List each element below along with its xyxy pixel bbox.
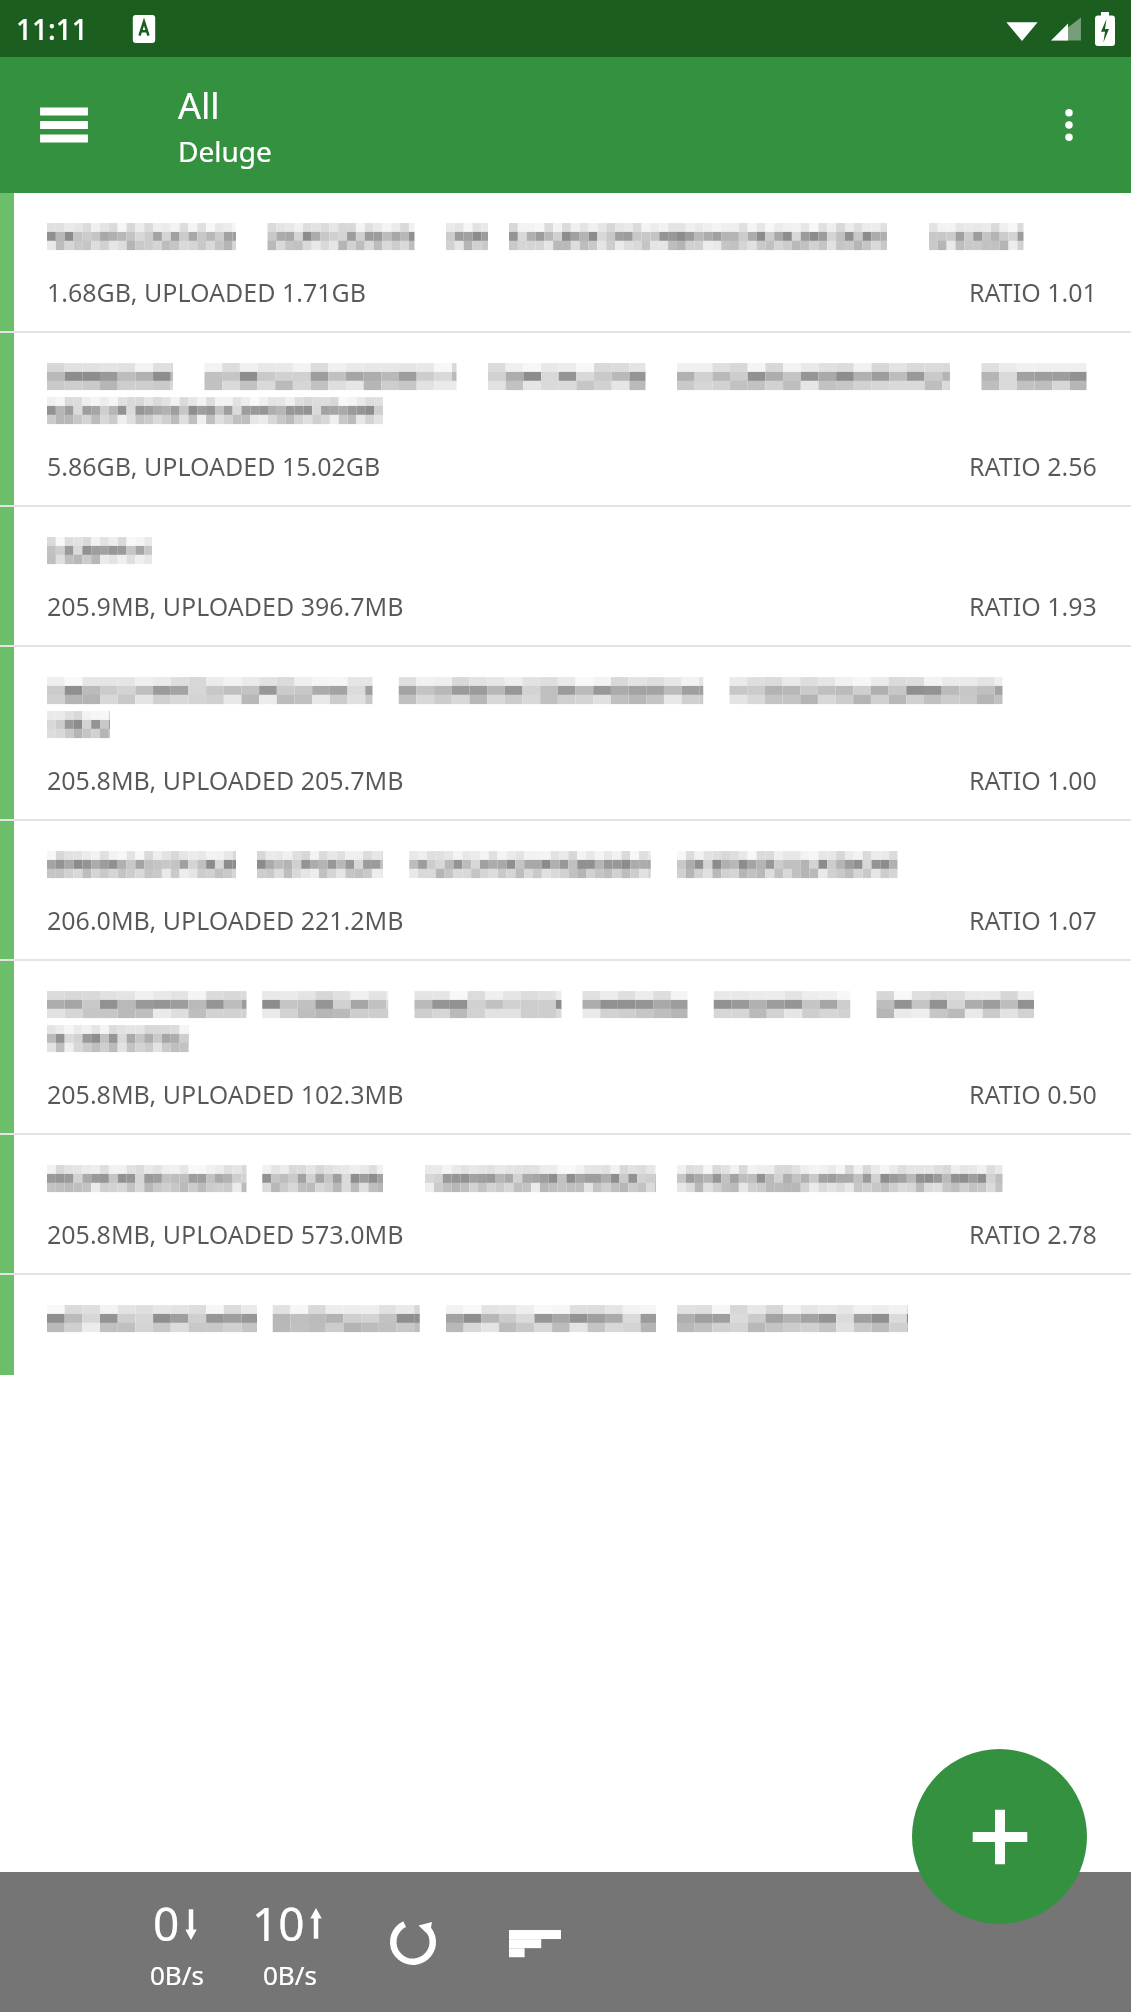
button[interactable]: 206.0MB, UPLOADED 221.2MB xyxy=(0,821,1131,959)
staticText: RATIO 1.01 xyxy=(969,275,1097,309)
button[interactable]: Sort xyxy=(489,1896,581,1988)
button[interactable]: 1.68GB, UPLOADED 1.71GB xyxy=(0,193,1131,331)
button[interactable]: 5.86GB, UPLOADED 15.02GB xyxy=(0,333,1131,505)
staticText: 11:11 xyxy=(16,10,88,48)
staticText: 205.8MB, UPLOADED 573.0MB xyxy=(47,1217,404,1251)
button[interactable]: 10 xyxy=(252,1892,327,1992)
staticText: 0B/s xyxy=(150,1957,204,1992)
staticText: All xyxy=(178,81,220,130)
staticText: RATIO 2.78 xyxy=(969,1217,1097,1251)
staticText: 10 xyxy=(252,1892,305,1955)
staticText: 205.8MB, UPLOADED 205.7MB xyxy=(47,763,404,797)
button[interactable]: 205.9MB, UPLOADED 396.7MB xyxy=(0,507,1131,645)
button[interactable]: More options xyxy=(1029,85,1109,165)
staticText: RATIO 1.93 xyxy=(969,589,1097,623)
staticText: 1.68GB, UPLOADED 1.71GB xyxy=(47,275,366,309)
staticText: 205.9MB, UPLOADED 396.7MB xyxy=(47,589,404,623)
staticText: 5.86GB, UPLOADED 15.02GB xyxy=(47,449,381,483)
staticText: RATIO 1.00 xyxy=(969,763,1097,797)
staticText: 205.8MB, UPLOADED 102.3MB xyxy=(47,1077,404,1111)
staticText: RATIO 2.56 xyxy=(969,449,1097,483)
staticText: RATIO 1.07 xyxy=(969,903,1097,937)
button[interactable]: Open navigation drawer xyxy=(20,81,108,169)
button[interactable]: 0 xyxy=(150,1892,204,1992)
button[interactable] xyxy=(0,1275,1131,1375)
staticText: Deluge xyxy=(178,132,272,170)
staticText: 206.0MB, UPLOADED 221.2MB xyxy=(47,903,404,937)
button[interactable]: 205.8MB, UPLOADED 573.0MB xyxy=(0,1135,1131,1273)
staticText: RATIO 0.50 xyxy=(969,1077,1097,1111)
staticText: 0 xyxy=(153,1892,180,1955)
button[interactable]: 205.8MB, UPLOADED 102.3MB xyxy=(0,961,1131,1133)
button[interactable]: Add torrent xyxy=(912,1749,1087,1924)
button[interactable]: 205.8MB, UPLOADED 205.7MB xyxy=(0,647,1131,819)
button[interactable]: Refresh xyxy=(367,1896,459,1988)
staticText: 0B/s xyxy=(263,1957,317,1992)
